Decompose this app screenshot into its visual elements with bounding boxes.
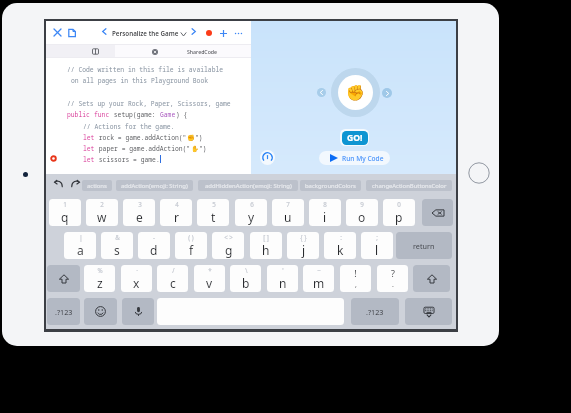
button[interactable]: changeActionButtonsColor	[366, 180, 452, 191]
button[interactable]: ·	[121, 265, 152, 292]
staticText: paper = game.addAction("	[95, 144, 191, 153]
button[interactable]: 4	[160, 199, 192, 226]
staticText: p	[395, 209, 403, 225]
staticText: -	[153, 233, 155, 241]
staticText: let	[83, 155, 95, 164]
button[interactable]: < >	[212, 232, 244, 259]
button[interactable]: .?123	[351, 298, 399, 325]
button[interactable]: Record	[203, 27, 215, 39]
button[interactable]: addHiddenAction(emoji: String)	[198, 180, 298, 191]
button[interactable]: /	[157, 265, 188, 292]
staticText: q	[61, 209, 69, 225]
button[interactable]: *	[194, 265, 225, 292]
button[interactable]: %	[84, 265, 115, 292]
button[interactable]: actions	[82, 180, 112, 191]
staticText: 5	[212, 200, 216, 208]
button[interactable]: ~	[303, 265, 334, 292]
staticText: SharedCode	[187, 48, 218, 55]
button[interactable]: Dictation	[122, 298, 154, 325]
staticText: ")	[199, 144, 207, 153]
button[interactable]: ( )	[175, 232, 207, 259]
button[interactable]: Show book	[46, 44, 115, 58]
staticText: 8	[323, 200, 327, 208]
button[interactable]: Forward	[188, 26, 199, 37]
button[interactable]: Backspace	[422, 199, 453, 226]
staticText: ✊	[346, 84, 365, 102]
button[interactable]: 5	[197, 199, 229, 226]
button[interactable]: [ ]	[250, 232, 282, 259]
staticText: ,	[355, 280, 357, 290]
button[interactable]: 6	[235, 199, 267, 226]
button[interactable]: backgroundColors	[300, 180, 361, 191]
staticText: 0	[397, 200, 401, 208]
button[interactable]: Add	[217, 27, 229, 39]
staticText: .?123	[366, 307, 384, 317]
staticText: scissors = game.	[95, 155, 160, 164]
staticText: actions	[87, 182, 107, 190]
staticText: ;	[376, 233, 378, 241]
button[interactable]: 1	[49, 199, 81, 226]
staticText: < >	[224, 233, 233, 241]
button[interactable]: Previous	[317, 88, 326, 97]
staticText: k	[337, 242, 344, 258]
button[interactable]: .?123	[47, 298, 80, 325]
button[interactable]: &	[101, 232, 133, 259]
button[interactable]: 7	[272, 199, 304, 226]
button[interactable]: addAction(emoji: String)	[116, 180, 193, 191]
staticText: z	[97, 275, 103, 291]
staticText: v	[206, 275, 213, 291]
button[interactable]: Emoji	[84, 298, 117, 325]
button[interactable]: |	[64, 232, 96, 259]
staticText: 2	[100, 200, 104, 208]
staticText: 7	[286, 200, 290, 208]
button[interactable]: Undo	[53, 178, 64, 189]
button[interactable]: 2	[86, 199, 118, 226]
staticText: 4	[175, 200, 179, 208]
staticText: u	[284, 209, 292, 225]
staticText: // Actions for the game.	[83, 122, 175, 131]
button[interactable]: return	[396, 232, 452, 259]
staticText: ( )	[188, 233, 194, 241]
button[interactable]: GO!	[340, 129, 369, 146]
button[interactable]: SharedCode	[115, 44, 251, 58]
staticText: let	[83, 133, 95, 142]
staticText: rock = game.addAction("	[95, 133, 187, 142]
button[interactable]: Next	[382, 88, 392, 98]
staticText: 6	[250, 200, 254, 208]
staticText: GO!	[347, 132, 363, 144]
button[interactable]: -	[138, 232, 170, 259]
button[interactable]: 9	[346, 199, 378, 226]
button[interactable]: Back	[99, 26, 110, 37]
staticText: 1	[63, 200, 67, 208]
staticText: 3	[138, 200, 142, 208]
button[interactable]: More	[232, 27, 244, 39]
button[interactable]: ?	[377, 265, 408, 292]
button[interactable]: !	[340, 265, 371, 292]
staticText: t	[211, 209, 216, 225]
button[interactable]: Close	[51, 26, 64, 39]
button[interactable]: \	[230, 265, 261, 292]
staticText: ✊	[187, 134, 195, 141]
button[interactable]: 3	[123, 199, 155, 226]
button[interactable]: Run My Code	[319, 151, 390, 165]
button[interactable]: Speed	[260, 150, 275, 165]
staticText: on all pages in this Playground Book	[71, 76, 209, 85]
button[interactable]: Shift	[413, 265, 450, 292]
staticText: |	[79, 233, 83, 241]
button[interactable]: Hide keyboard	[405, 298, 452, 325]
staticText: ~	[317, 266, 321, 274]
button[interactable]: { }	[287, 232, 319, 259]
staticText: g	[225, 242, 233, 258]
staticText: ·	[136, 266, 138, 274]
button[interactable]: 0	[383, 199, 415, 226]
button[interactable]: ;	[361, 232, 393, 259]
button[interactable]: :	[324, 232, 356, 259]
button[interactable]: '	[267, 265, 298, 292]
button[interactable]: New file	[65, 26, 78, 39]
button[interactable]: 8	[309, 199, 341, 226]
button[interactable]: Shift	[47, 265, 80, 292]
staticText: h	[262, 242, 270, 258]
button[interactable]: Redo	[70, 178, 81, 189]
